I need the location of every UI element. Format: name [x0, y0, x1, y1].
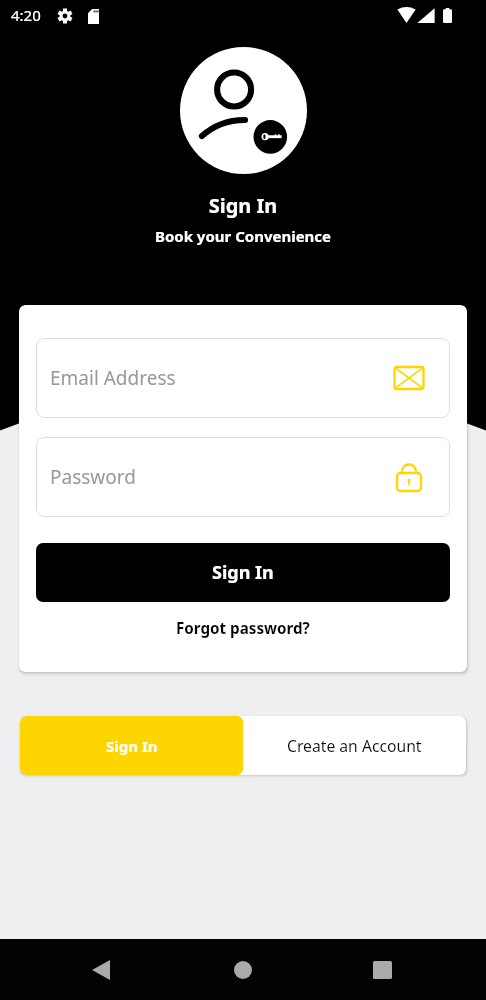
staticText: Sign In [0, 192, 486, 219]
button[interactable]: Home [219, 946, 267, 994]
button[interactable]: Sign In [20, 716, 243, 775]
staticText: Forgot password? [176, 618, 310, 639]
button[interactable]: Back [77, 946, 125, 994]
staticText: 4:20 [11, 5, 41, 25]
button[interactable]: Recent apps [358, 946, 406, 994]
button[interactable]: Create an Account [243, 716, 466, 775]
staticText: Create an Account [287, 735, 422, 756]
staticText: Sign In [106, 736, 158, 756]
button[interactable]: Sign In [36, 543, 450, 602]
staticText: Book your Convenience [0, 226, 486, 246]
button[interactable]: Password [36, 437, 450, 517]
staticText: Password [50, 464, 394, 490]
staticText: Email Address [50, 365, 394, 391]
button[interactable]: Email Address [36, 338, 450, 418]
staticText: Sign In [212, 560, 274, 585]
button[interactable]: Forgot password? [168, 614, 318, 643]
